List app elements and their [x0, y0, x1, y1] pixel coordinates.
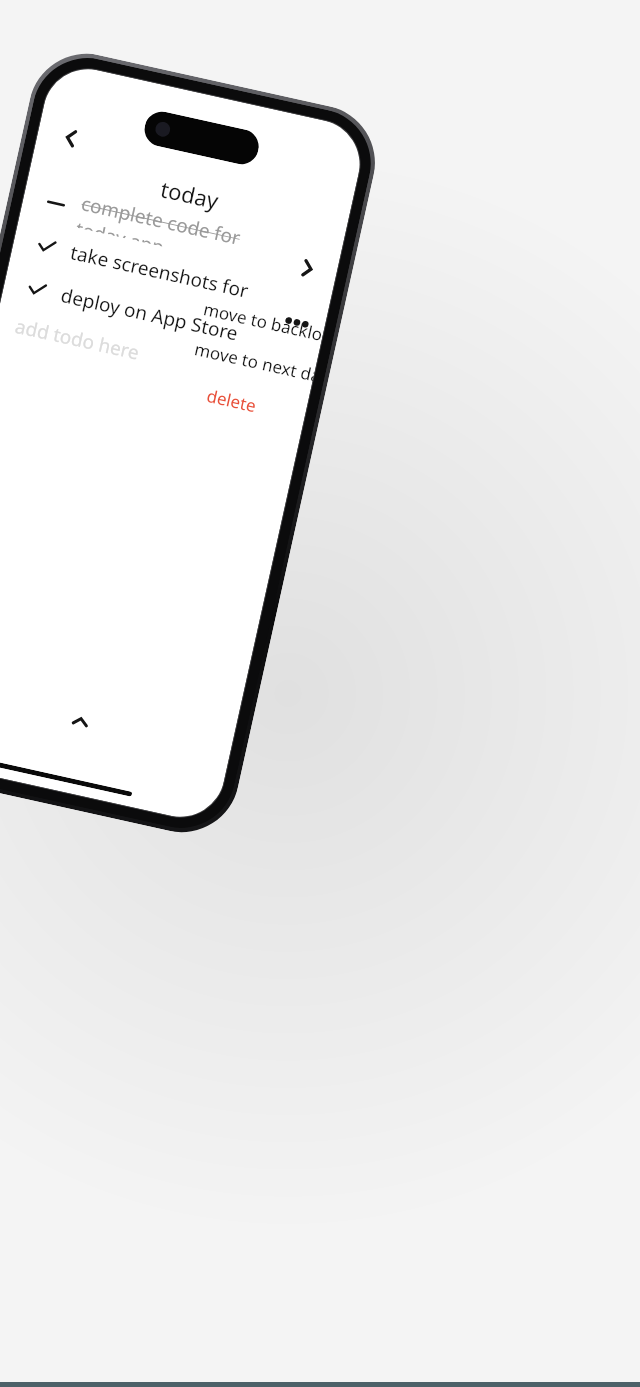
button[interactable]: Scroll up — [56, 698, 104, 746]
button[interactable]: delete — [200, 381, 263, 420]
button[interactable]: More options — [274, 301, 320, 343]
button[interactable]: deploy on App Store — [18, 268, 271, 359]
staticText: complete code for today app — [76, 190, 290, 273]
button[interactable]: move to backlog — [197, 294, 326, 348]
button[interactable]: complete code for today app — [37, 182, 290, 273]
staticText: delete — [205, 384, 258, 417]
button[interactable]: Forward — [283, 244, 331, 292]
button[interactable]: move to next day — [188, 334, 317, 388]
staticText: take screenshots for — [68, 239, 251, 304]
button[interactable]: add todo here — [10, 309, 262, 396]
staticText: move to backlog — [201, 297, 325, 346]
button[interactable]: take screenshots for — [28, 225, 281, 316]
staticText: deploy on App Store — [58, 282, 241, 347]
staticText: today — [158, 173, 222, 215]
staticText: move to next day — [192, 337, 316, 386]
staticText: add todo here — [13, 313, 142, 366]
button[interactable]: Back — [48, 114, 95, 162]
